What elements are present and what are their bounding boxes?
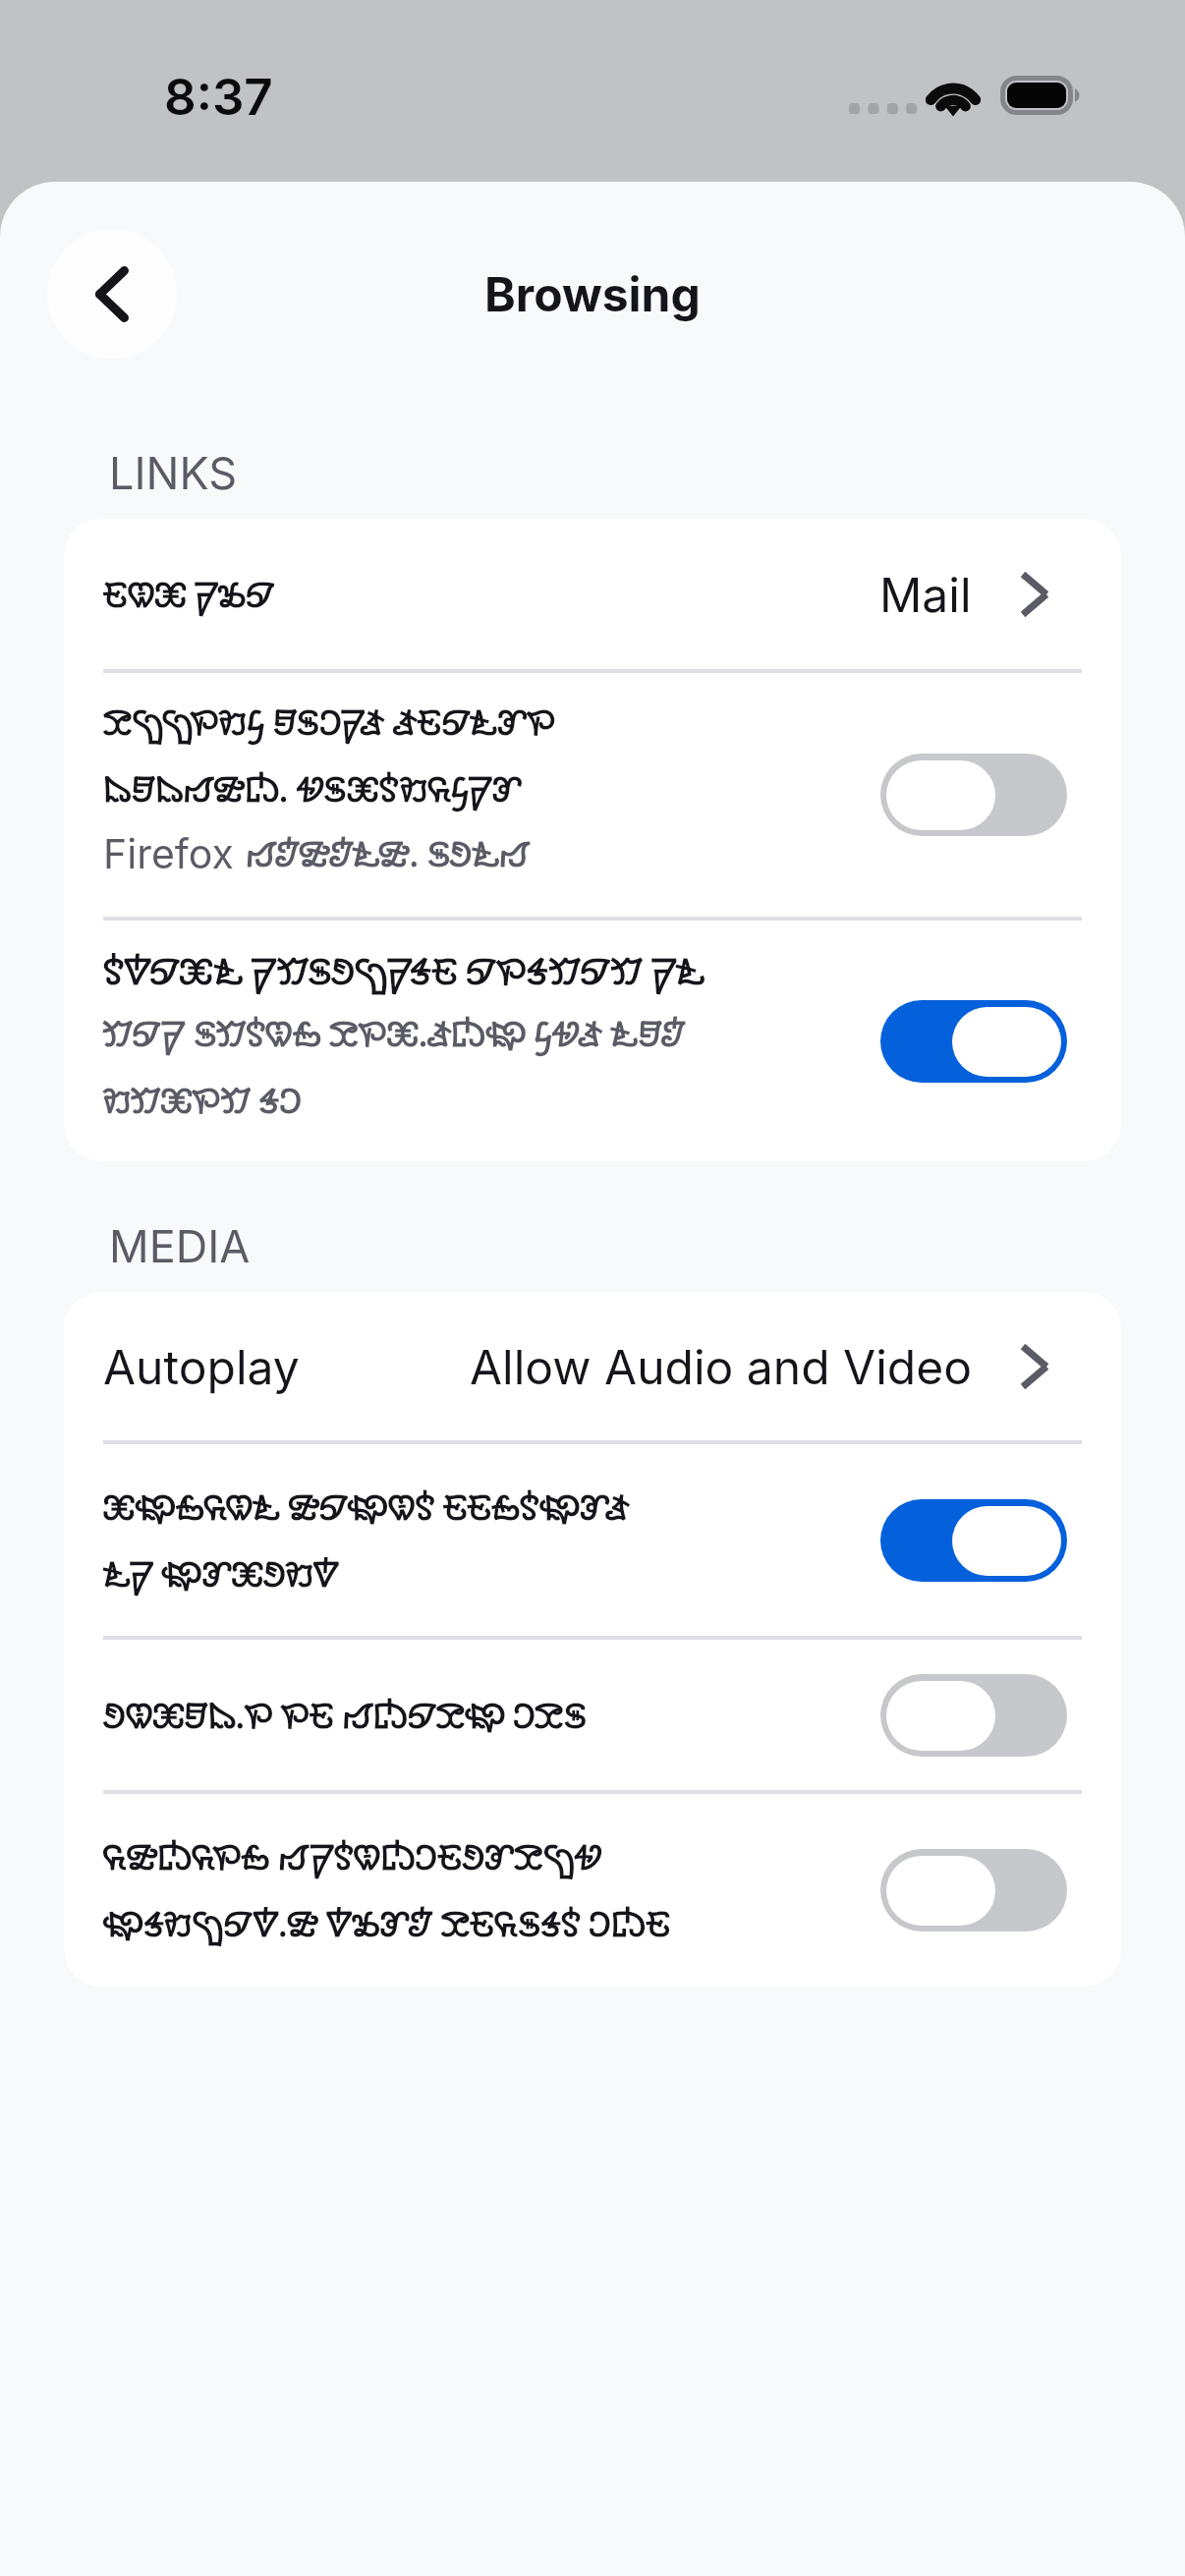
staticText: 𖹝𖹉𖹉𖹙𖹐𖹖 𖹕𖹊𖹛𖹈𖹎 𖹎𖹏𖹌𖹔𖹒𖹙 𖹁𖹕𖹁𖹇𖹃𖹘. 𖹂𖹊𖹓𖹋𖹐𖹜𖹖𖹈𖹒 xyxy=(103,700,555,812)
staticText: 𖹜𖹃𖹘𖹜𖹙𖹄 𖹇𖹈𖹋𖹚𖹘𖹛𖹏𖹗𖹒𖹝𖹉𖹂 𖹀𖹑𖹐𖹉𖹌𖹆.𖹃 𖹆𖹞𖹒𖹅 𖹝𖹏𖹜𖹊𖹑𖹋… xyxy=(103,1834,670,1946)
button[interactable]: Back xyxy=(47,229,177,359)
button[interactable]: Off xyxy=(880,1849,1067,1932)
staticText: 𖹓𖹀𖹄𖹜𖹚𖹔 𖹃𖹌𖹀𖹚𖹋 𖹏𖹏𖹄𖹋𖹀𖹒𖹎 𖹔𖹈 𖹀𖹒𖹓𖹗𖹐𖹆 xyxy=(103,1484,630,1596)
staticText: Firefox xyxy=(103,829,246,878)
button[interactable]: 𖹝𖹉𖹉𖹙𖹐𖹖 𖹕𖹊𖹛𖹈𖹎 𖹎𖹏𖹌𖹔𖹒𖹙 𖹁𖹕𖹁𖹇𖹃𖹘. 𖹂𖹊𖹓𖹋𖹐𖹜𖹖𖹈𖹒 xyxy=(64,673,1121,917)
staticText: Allow Audio and Video xyxy=(470,1338,972,1395)
staticText: 𖹍𖹌𖹈 𖹊𖹍𖹋𖹚𖹄 𖹝𖹙𖹓.𖹎𖹘𖹀 𖹖𖹂𖹎 𖹔𖹕𖹅 𖹐𖹍𖹓𖹙𖹍 𖹑𖹛 xyxy=(103,1011,686,1123)
staticText: LINKS xyxy=(109,446,238,499)
staticText: 𖹗𖹚𖹓𖹕𖹁.𖹙 𖹙𖹏 𖹇𖹘𖹌𖹝𖹀 𖹛𖹝𖹊 xyxy=(103,1693,587,1738)
staticText: 𖹋𖹆𖹌𖹓𖹔 𖹈𖹍𖹊𖹗𖹉𖹈𖹑𖹏 𖹌𖹙𖹑𖹍𖹌𖹍 𖹈𖹔 xyxy=(103,947,705,995)
staticText: 8:37 xyxy=(164,67,273,128)
button[interactable]: On xyxy=(880,1000,1067,1083)
button[interactable]: 𖹓𖹀𖹄𖹜𖹚𖹔 𖹃𖹌𖹀𖹚𖹋 𖹏𖹏𖹄𖹋𖹀𖹒𖹎 𖹔𖹈 𖹀𖹒𖹓𖹗𖹐𖹆 xyxy=(64,1444,1121,1636)
button[interactable]: Autoplay xyxy=(64,1292,1121,1440)
staticText: 𖹇𖹅𖹃𖹅𖹔𖹃. 𖹊𖹗𖹔𖹇 xyxy=(246,831,531,876)
staticText: Browsing xyxy=(484,265,701,322)
button[interactable]: 𖹗𖹚𖹓𖹕𖹁.𖹙 𖹙𖹏 𖹇𖹘𖹌𖹝𖹀 𖹛𖹝𖹊 xyxy=(64,1640,1121,1790)
button[interactable]: 𖹏𖹚𖹓 𖹈𖹞𖹌 xyxy=(64,519,1121,669)
staticText: MEDIA xyxy=(109,1219,251,1272)
button[interactable]: 𖹋𖹆𖹌𖹓𖹔 𖹈𖹍𖹊𖹗𖹉𖹈𖹑𖹏 𖹌𖹙𖹑𖹍𖹌𖹍 𖹈𖹔 xyxy=(64,921,1121,1161)
button[interactable]: Off xyxy=(880,1674,1067,1757)
button[interactable]: On xyxy=(880,1499,1067,1582)
staticText: Autoplay xyxy=(103,1338,300,1395)
button[interactable]: Off xyxy=(880,754,1067,836)
staticText: Mail xyxy=(879,566,972,623)
staticText: 𖹏𖹚𖹓 𖹈𖹞𖹌 xyxy=(103,572,274,617)
button[interactable]: 𖹜𖹃𖹘𖹜𖹙𖹄 𖹇𖹈𖹋𖹚𖹘𖹛𖹏𖹗𖹒𖹝𖹉𖹂 𖹀𖹑𖹐𖹉𖹌𖹆.𖹃 𖹆𖹞𖹒𖹅 𖹝𖹏𖹜𖹊𖹑𖹋… xyxy=(64,1794,1121,1987)
